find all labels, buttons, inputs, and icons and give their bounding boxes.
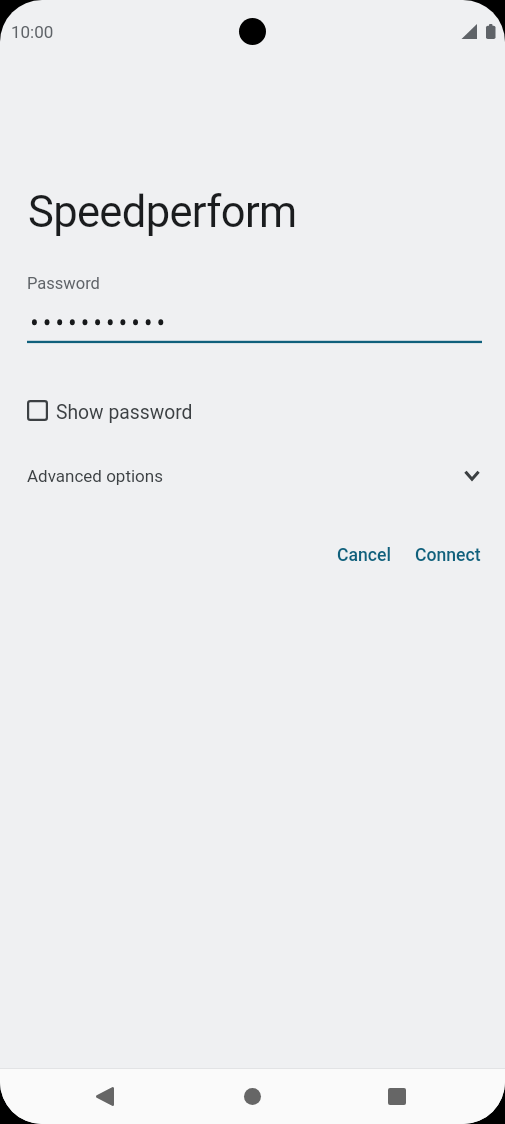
button[interactable]: Cancel	[327, 538, 400, 572]
staticText: Cancel	[337, 545, 391, 566]
staticText: Speedperform	[28, 187, 297, 238]
staticText: Password	[27, 274, 100, 293]
button[interactable]: Back	[77, 1069, 133, 1124]
button[interactable]: Recent apps	[369, 1069, 425, 1124]
button[interactable]: Connect	[405, 538, 490, 572]
staticText: 10:00	[11, 22, 54, 42]
button[interactable]: Show password	[0, 389, 505, 432]
staticText: Connect	[415, 545, 481, 566]
button[interactable]: Advanced options	[0, 455, 505, 497]
staticText: Show password	[56, 401, 193, 424]
staticText: Advanced options	[27, 466, 163, 486]
button[interactable]: Home	[224, 1069, 280, 1124]
